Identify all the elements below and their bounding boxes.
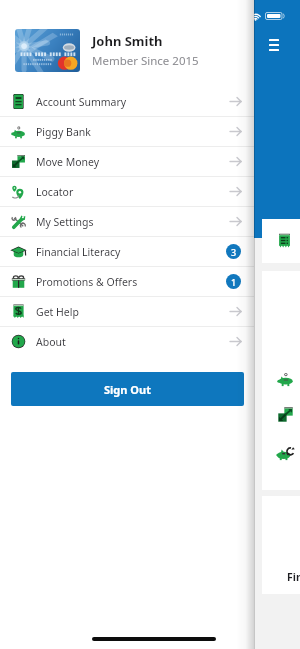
- staticText: Sign Out: [104, 382, 151, 397]
- staticText: My Settings: [36, 215, 94, 229]
- staticText: Financial Liter: [287, 570, 300, 584]
- staticText: 1: [231, 276, 237, 288]
- staticText: John Smith: [92, 32, 163, 50]
- button[interactable]: About: [0, 327, 254, 356]
- staticText: Financial Literacy: [36, 245, 121, 259]
- button[interactable]: Financial Literacy: [0, 237, 254, 266]
- button[interactable]: Financial Liter: [262, 496, 300, 594]
- staticText: Account Summary: [36, 95, 127, 109]
- staticText: About: [36, 335, 66, 349]
- button[interactable]: My Settings: [0, 207, 254, 236]
- staticText: Piggy Bank: [36, 125, 91, 139]
- button[interactable]: [262, 219, 300, 263]
- button[interactable]: John Smith: [15, 29, 254, 72]
- staticText: Locator: [36, 185, 74, 199]
- button[interactable]: Move Money: [0, 147, 254, 176]
- button[interactable]: Account Summary: [0, 87, 254, 116]
- staticText: Get Help: [36, 305, 79, 319]
- staticText: Move Money: [36, 155, 100, 169]
- button[interactable]: Promotions & Offers: [0, 267, 254, 296]
- button[interactable]: Locator: [0, 177, 254, 206]
- button[interactable]: Piggy Bank: [0, 117, 254, 146]
- staticText: Member Since 2015: [92, 53, 199, 69]
- button[interactable]: [262, 271, 300, 490]
- button[interactable]: Open navigation menu: [262, 33, 292, 63]
- button[interactable]: Get Help: [0, 297, 254, 326]
- staticText: Promotions & Offers: [36, 275, 138, 289]
- button[interactable]: Sign Out: [11, 372, 244, 406]
- staticText: 3: [231, 246, 237, 258]
